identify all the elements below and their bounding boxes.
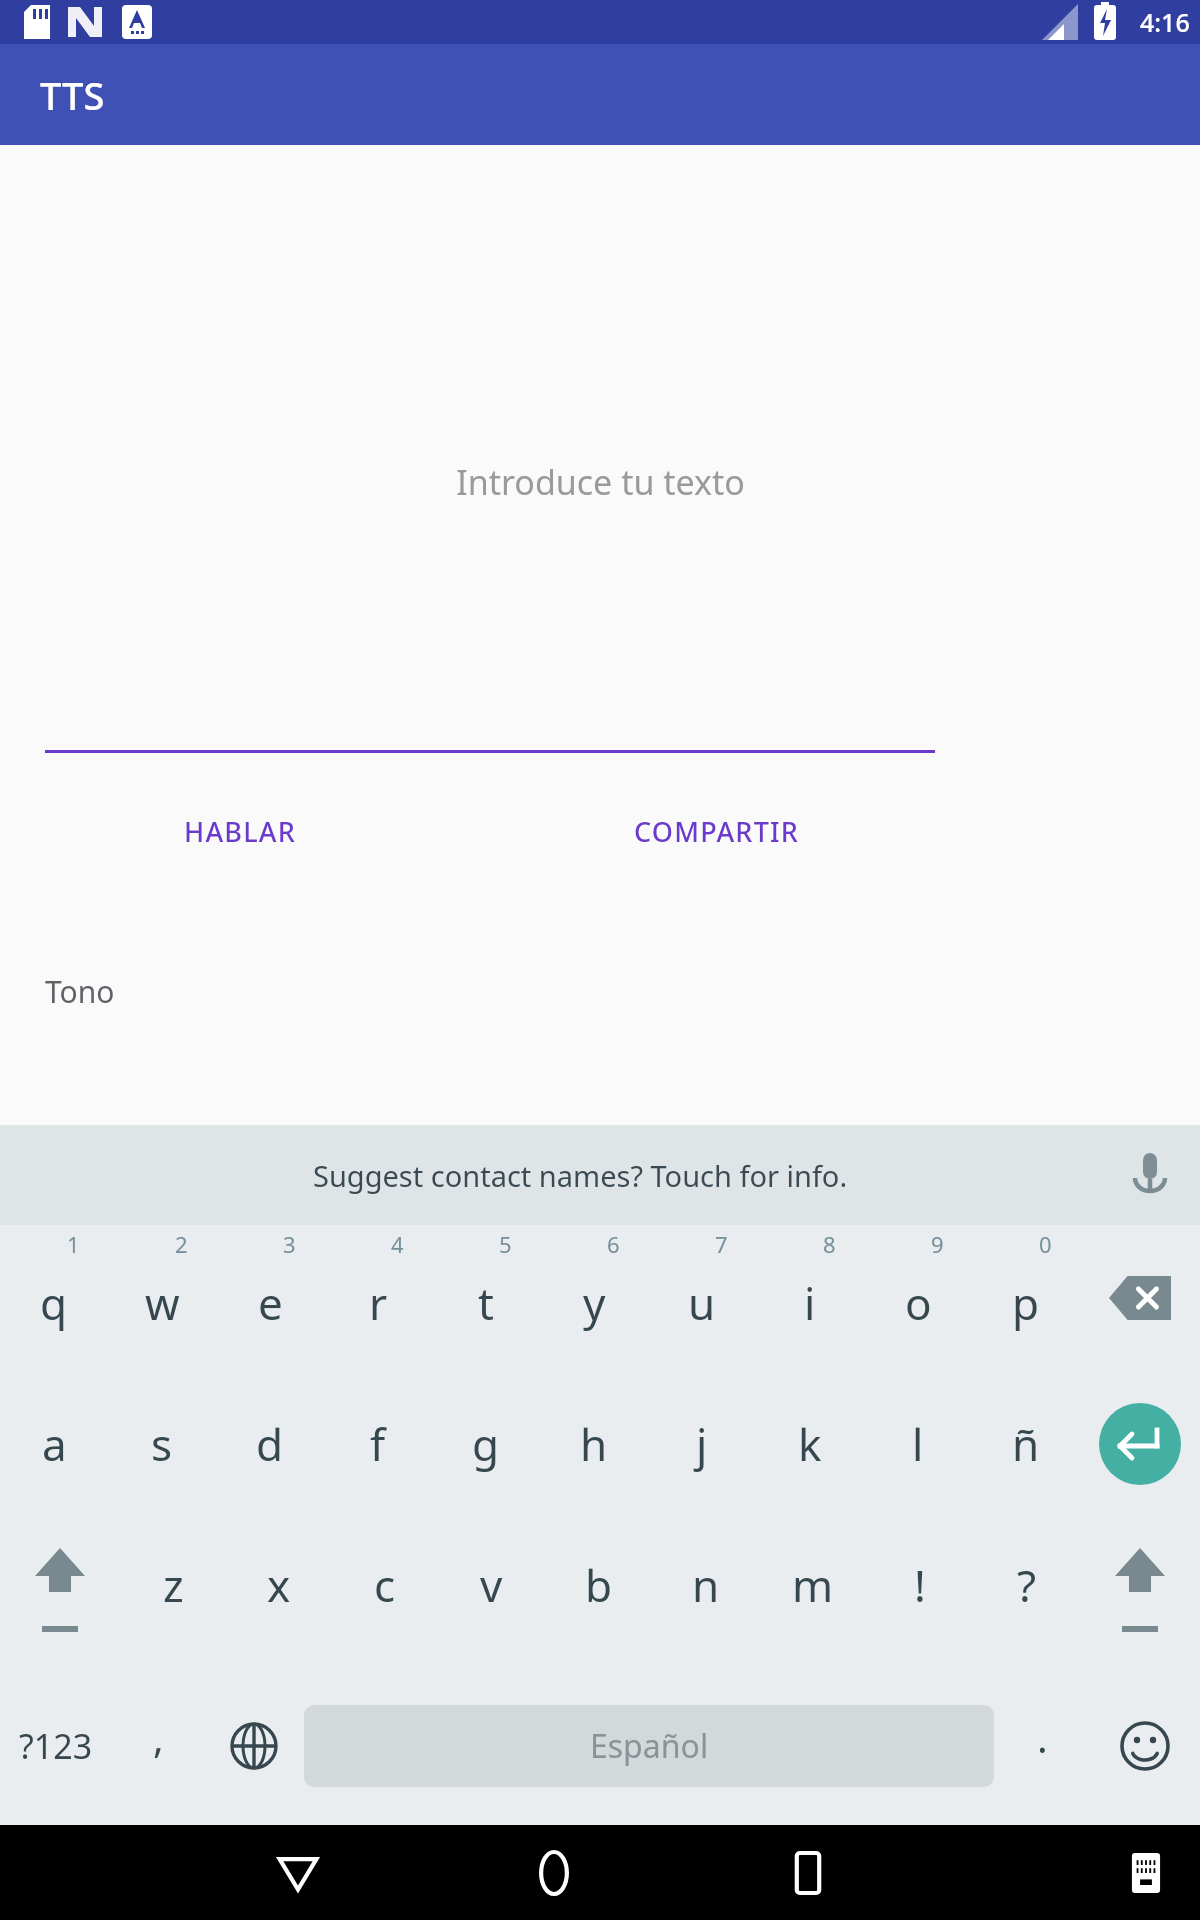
staticText: u xyxy=(688,1273,716,1333)
button[interactable]: z xyxy=(120,1517,226,1667)
button[interactable]: 1 xyxy=(0,1225,108,1371)
button[interactable]: k xyxy=(756,1371,864,1517)
staticText: h xyxy=(580,1414,608,1474)
button[interactable]: ! xyxy=(866,1517,973,1667)
staticText: TTS xyxy=(40,69,105,121)
button[interactable]: 9 xyxy=(864,1225,972,1371)
staticText: i xyxy=(804,1273,816,1333)
staticText: 6 xyxy=(607,1229,620,1259)
button[interactable]: s xyxy=(108,1371,216,1517)
button[interactable]: v xyxy=(438,1517,545,1667)
button[interactable]: ? xyxy=(973,1517,1080,1667)
staticText: m xyxy=(792,1555,834,1615)
staticText: p xyxy=(1012,1273,1040,1333)
button[interactable]: c xyxy=(332,1517,438,1667)
button[interactable]: Español xyxy=(304,1705,994,1787)
staticText: Tono xyxy=(45,971,115,1012)
button[interactable]: Backspace xyxy=(1080,1225,1200,1371)
button[interactable]: 0 xyxy=(972,1225,1080,1371)
button[interactable]: 2 xyxy=(108,1225,216,1371)
staticText: 3 xyxy=(283,1229,296,1259)
staticText: COMPARTIR xyxy=(634,813,800,850)
staticText: a xyxy=(42,1414,67,1474)
staticText: q xyxy=(40,1273,68,1333)
staticText: 7 xyxy=(715,1229,728,1259)
staticText: b xyxy=(585,1555,613,1615)
staticText: . xyxy=(1037,1710,1048,1764)
button[interactable]: x xyxy=(226,1517,332,1667)
button[interactable]: ?123 xyxy=(0,1667,112,1825)
button[interactable]: f xyxy=(324,1371,432,1517)
button[interactable]: 7 xyxy=(648,1225,756,1371)
staticText: 1 xyxy=(67,1229,80,1259)
staticText: 8 xyxy=(823,1229,836,1259)
button[interactable]: COMPARTIR xyxy=(610,795,824,868)
staticText: w xyxy=(145,1273,180,1333)
button[interactable]: Change language xyxy=(204,1667,304,1825)
button[interactable]: Back xyxy=(250,1825,346,1920)
staticText: 0 xyxy=(1039,1229,1052,1259)
button[interactable]: a xyxy=(0,1371,108,1517)
staticText: c xyxy=(374,1555,396,1615)
staticText: s xyxy=(151,1414,173,1474)
button[interactable]: h xyxy=(540,1371,648,1517)
staticText: , xyxy=(153,1710,164,1764)
button[interactable]: Emoji xyxy=(1090,1667,1200,1825)
staticText: e xyxy=(258,1273,283,1333)
staticText: Suggest contact names? Touch for info. xyxy=(313,1156,848,1195)
staticText: HABLAR xyxy=(184,813,296,850)
staticText: Español xyxy=(590,1724,709,1768)
button[interactable]: Switch keyboard xyxy=(1098,1825,1194,1920)
button[interactable]: 8 xyxy=(756,1225,864,1371)
staticText: l xyxy=(912,1414,924,1474)
staticText: g xyxy=(472,1414,500,1474)
button[interactable]: d xyxy=(216,1371,324,1517)
staticText: 5 xyxy=(499,1229,512,1259)
staticText: x xyxy=(267,1555,291,1615)
button[interactable]: g xyxy=(432,1371,540,1517)
staticText: ?123 xyxy=(19,1723,93,1769)
staticText: Introduce tu texto xyxy=(456,459,745,505)
button[interactable]: Home xyxy=(506,1825,602,1920)
button[interactable]: b xyxy=(545,1517,652,1667)
staticText: d xyxy=(256,1414,284,1474)
button[interactable]: l xyxy=(864,1371,972,1517)
button[interactable]: 5 xyxy=(432,1225,540,1371)
button[interactable]: n xyxy=(652,1517,759,1667)
button[interactable]: m xyxy=(759,1517,866,1667)
staticText: 4 xyxy=(391,1229,404,1259)
staticText: f xyxy=(370,1414,386,1474)
button[interactable]: Recents xyxy=(760,1825,856,1920)
button[interactable]: , xyxy=(112,1667,204,1825)
staticText: n xyxy=(692,1555,720,1615)
staticText: k xyxy=(798,1414,822,1474)
button[interactable]: Suggest contact names? Touch for info. xyxy=(0,1125,1200,1225)
button[interactable]: . xyxy=(994,1667,1090,1825)
button[interactable]: 4 xyxy=(324,1225,432,1371)
staticText: r xyxy=(369,1273,388,1333)
button[interactable]: j xyxy=(648,1371,756,1517)
staticText: 2 xyxy=(175,1229,188,1259)
button[interactable]: 3 xyxy=(216,1225,324,1371)
staticText: z xyxy=(163,1555,184,1615)
button[interactable]: 6 xyxy=(540,1225,648,1371)
staticText: o xyxy=(905,1273,932,1333)
button[interactable]: ñ xyxy=(972,1371,1080,1517)
staticText: j xyxy=(696,1414,708,1474)
staticText: 9 xyxy=(931,1229,944,1259)
button[interactable]: Shift xyxy=(0,1517,120,1667)
staticText: ! xyxy=(914,1555,926,1615)
staticText: 4:16 xyxy=(1140,5,1190,39)
staticText: ñ xyxy=(1012,1414,1040,1474)
staticText: v xyxy=(480,1555,503,1615)
staticText: y xyxy=(583,1273,606,1333)
button[interactable]: HABLAR xyxy=(160,795,320,868)
staticText: t xyxy=(478,1273,494,1333)
staticText: ? xyxy=(1017,1555,1037,1615)
button[interactable]: Enter xyxy=(1080,1371,1200,1517)
button[interactable]: Voice input xyxy=(1122,1147,1178,1203)
button[interactable]: Shift xyxy=(1080,1517,1200,1667)
